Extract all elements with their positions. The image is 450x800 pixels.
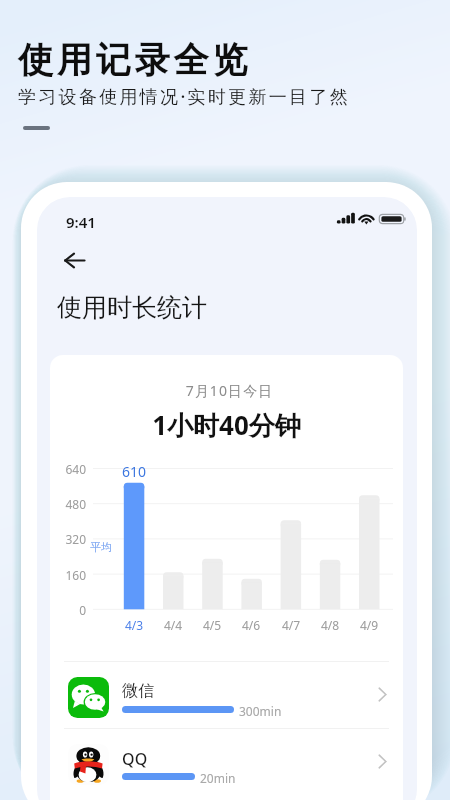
staticText: 4/9 [353,617,385,633]
staticText: 4/6 [235,617,267,633]
staticText: 微信 [122,681,155,701]
button[interactable]: 微信 [50,661,403,728]
staticText: QQ [122,748,148,770]
staticText: 4/3 [118,617,150,633]
staticText: 4/8 [314,617,346,633]
button[interactable]: Back [54,240,94,280]
staticText: 320 [50,531,86,547]
staticText: 480 [50,496,86,512]
button[interactable]: QQ [50,728,403,795]
staticText: 4/5 [196,617,228,633]
staticText: 640 [50,461,86,477]
staticText: 使用时长统计 [57,292,207,323]
staticText: 160 [50,567,86,583]
staticText: 4/4 [157,617,189,633]
staticText: 平均 [90,540,112,554]
staticText: 610 [114,462,154,481]
staticText: 9:41 [66,212,96,232]
staticText: 4/7 [275,617,307,633]
staticText: 0 [50,602,86,618]
staticText: 1小时40分钟 [50,407,403,443]
staticText: 20min [200,770,236,786]
staticText: 7月10日今日 [53,381,403,400]
staticText: 300min [239,703,282,719]
staticText: 学习设备使用情况·实时更新一目了然 [18,84,350,109]
staticText: 使用记录全览 [18,38,252,82]
